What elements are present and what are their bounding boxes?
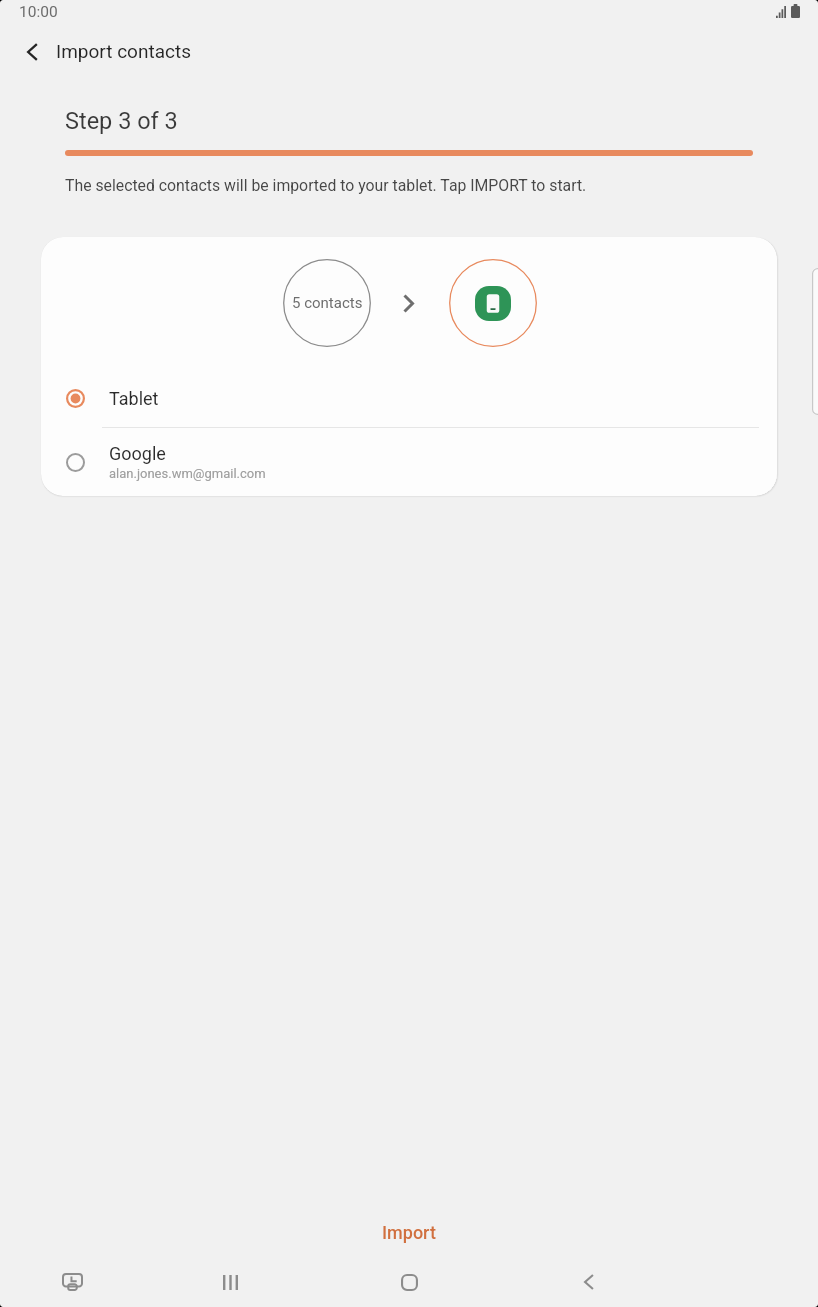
button[interactable]: Import (348, 1214, 470, 1251)
staticText: 10:00 (19, 3, 58, 21)
button[interactable]: Navigate up (10, 30, 55, 73)
button[interactable]: Screenshot (42, 1257, 102, 1307)
staticText: Tablet (109, 388, 159, 409)
button[interactable]: Recent apps (200, 1257, 260, 1307)
staticText: 5 contacts (292, 294, 363, 312)
button[interactable]: Google (41, 428, 777, 496)
button[interactable]: Home (379, 1257, 439, 1307)
button[interactable]: Tablet (41, 369, 777, 427)
staticText: The selected contacts will be imported t… (65, 176, 587, 195)
staticText: alan.jones.wm@gmail.com (109, 466, 266, 481)
button[interactable]: Back (559, 1257, 619, 1307)
staticText: Import (382, 1222, 436, 1243)
staticText: Step 3 of 3 (65, 107, 178, 135)
staticText: Google (109, 443, 166, 464)
staticText: Import contacts (56, 40, 191, 62)
